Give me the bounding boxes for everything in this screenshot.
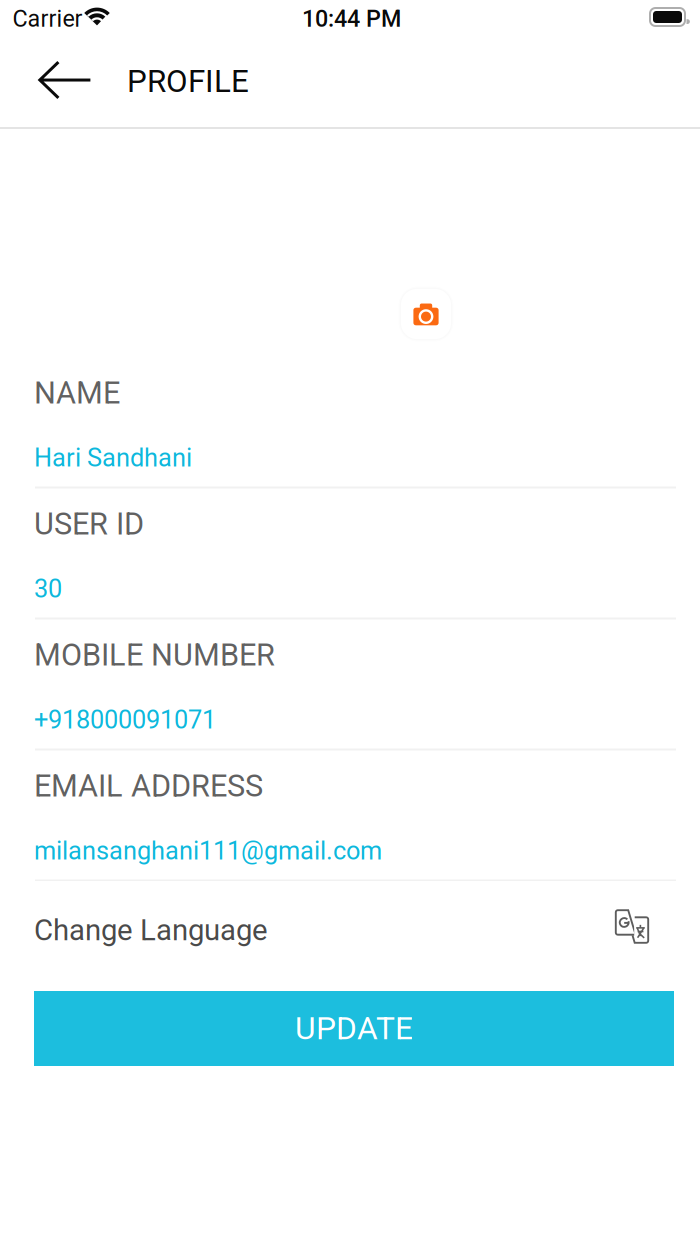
staticText: MOBILE NUMBER <box>34 637 275 673</box>
staticText: UPDATE <box>295 1010 413 1047</box>
staticText: Hari Sandhani <box>34 443 192 473</box>
staticText: 30 <box>34 574 62 604</box>
staticText: +918000091071 <box>34 705 216 735</box>
staticText: USER ID <box>34 506 144 542</box>
staticText: Carrier <box>12 5 82 32</box>
button[interactable]: UPDATE <box>34 991 674 1066</box>
staticText: milansanghani111@gmail.com <box>34 836 382 866</box>
staticText: NAME <box>34 375 120 411</box>
staticText: PROFILE <box>127 63 249 100</box>
staticText: 10:44 PM <box>302 5 401 32</box>
staticText: Change Language <box>34 913 268 947</box>
staticText: EMAIL ADDRESS <box>34 768 263 804</box>
button[interactable]: Change profile photo <box>397 285 455 343</box>
button[interactable]: Back <box>19 42 111 118</box>
button[interactable]: Change Language <box>35 881 676 991</box>
